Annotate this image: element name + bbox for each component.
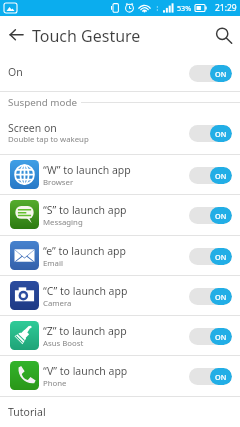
staticText: Suspend mode — [8, 96, 77, 109]
staticText: “e” to launch app — [43, 244, 126, 258]
staticText: Email — [43, 258, 64, 269]
staticText: Browser — [43, 177, 74, 188]
staticText: 53% — [177, 3, 192, 13]
staticText: “W” to launch app — [43, 163, 131, 177]
staticText: Screen on — [8, 121, 57, 135]
button[interactable]: On — [0, 53, 240, 91]
staticText: Phone — [43, 378, 67, 389]
button[interactable]: “S” to launch app — [0, 194, 240, 235]
staticText: “V” to launch app — [43, 364, 128, 378]
staticText: ON — [215, 129, 227, 139]
staticText: ON — [215, 292, 227, 302]
button[interactable]: Toggle on — [189, 207, 232, 224]
staticText: Camera — [43, 298, 72, 309]
staticText: ON — [215, 171, 227, 181]
button[interactable]: Toggle on — [189, 65, 232, 82]
staticText: 21:29 — [215, 2, 237, 14]
staticText: “C” to launch app — [43, 284, 128, 298]
button[interactable]: “V” to launch app — [0, 355, 240, 396]
staticText: Messaging — [43, 217, 83, 228]
button[interactable]: “Z” to launch app — [0, 315, 240, 355]
staticText: “S” to launch app — [43, 203, 127, 217]
button[interactable]: Back — [0, 16, 33, 53]
button[interactable]: Toggle on — [189, 368, 232, 385]
button[interactable]: Toggle on — [189, 288, 232, 305]
staticText: ON — [215, 252, 227, 262]
staticText: Touch Gesture — [32, 25, 141, 47]
button[interactable]: Toggle on — [189, 125, 232, 142]
button[interactable]: Toggle on — [189, 328, 232, 345]
staticText: Asus Boost — [43, 338, 84, 349]
button[interactable]: Toggle on — [189, 167, 232, 184]
button[interactable]: Toggle on — [189, 248, 232, 265]
button[interactable]: “W” to launch app — [0, 154, 240, 194]
staticText: On — [8, 65, 23, 79]
button[interactable]: Tutorial — [0, 396, 240, 427]
staticText: ON — [215, 211, 227, 221]
button[interactable]: “C” to launch app — [0, 275, 240, 315]
staticText: Tutorial — [8, 405, 46, 419]
staticText: Double tap to wakeup — [8, 134, 89, 145]
staticText: ON — [215, 69, 227, 79]
staticText: ON — [215, 372, 227, 382]
button[interactable]: Search — [206, 16, 240, 53]
button[interactable]: “e” to launch app — [0, 235, 240, 275]
staticText: “Z” to launch app — [43, 324, 127, 338]
button[interactable]: Screen on — [0, 110, 240, 154]
staticText: ON — [215, 332, 227, 342]
